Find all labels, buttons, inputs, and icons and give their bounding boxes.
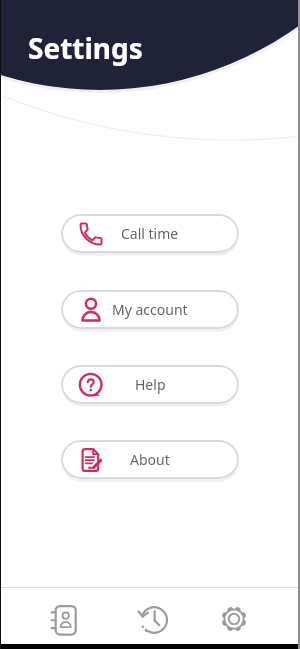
button[interactable]	[42, 596, 90, 644]
staticText: Call time	[121, 224, 179, 243]
button[interactable]: About	[61, 440, 239, 479]
button[interactable]	[129, 596, 177, 644]
staticText: My account	[112, 300, 188, 319]
staticText: Help	[135, 375, 166, 394]
button[interactable]	[210, 595, 258, 643]
button[interactable]: My account	[61, 290, 239, 329]
staticText: About	[130, 450, 170, 469]
staticText: Settings	[28, 29, 143, 67]
button[interactable]: Call time	[61, 214, 239, 253]
button[interactable]: Help	[61, 365, 239, 404]
